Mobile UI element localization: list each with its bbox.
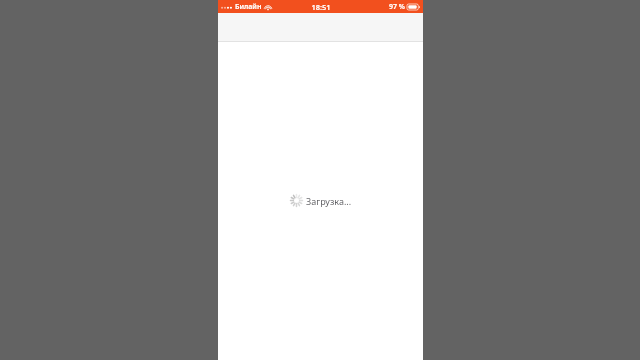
staticText: 18:51 <box>311 2 331 12</box>
staticText: Билайн <box>235 2 262 12</box>
other: Loading <box>290 194 303 207</box>
staticText: Загрузка... <box>306 195 352 207</box>
staticText: 97 % <box>389 2 405 12</box>
